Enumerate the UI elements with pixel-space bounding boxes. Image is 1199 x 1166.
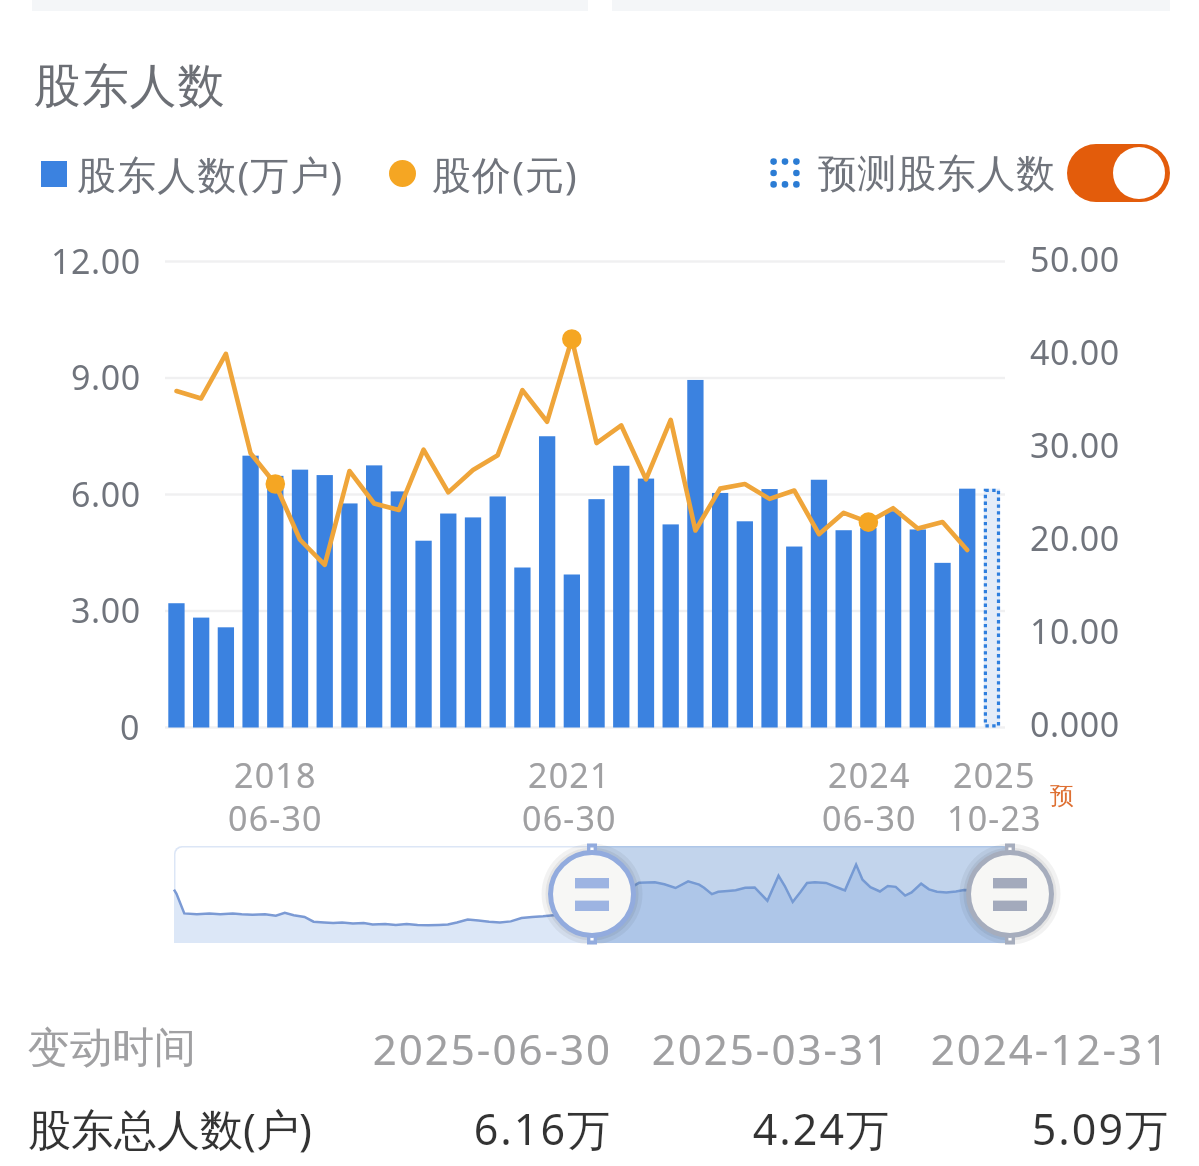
staticText: 6.16万	[334, 1099, 612, 1158]
staticText: 股东总人数(户)	[28, 1099, 312, 1158]
staticText: 2024	[828, 752, 911, 798]
staticText: 股价(元)	[432, 147, 578, 200]
button[interactable]: 股东人数(万户)	[41, 147, 344, 200]
staticText: 10-23	[947, 795, 1042, 841]
staticText: 预测股东人数	[818, 149, 1056, 198]
button[interactable]: Drag handle	[958, 842, 1062, 946]
staticText: 2024-12-31	[891, 1020, 1170, 1077]
staticText: 5.09万	[891, 1099, 1170, 1158]
staticText: 0	[120, 704, 141, 750]
staticText: 06-30	[822, 795, 917, 841]
staticText: 2025-06-30	[334, 1020, 612, 1077]
staticText: 40.00	[1030, 329, 1120, 375]
staticText: 股东人数(万户)	[77, 147, 344, 200]
button[interactable]: Drag handle	[540, 842, 644, 946]
button[interactable]: 预测股东人数	[770, 144, 1170, 202]
staticText: 0.000	[1030, 701, 1120, 747]
button[interactable]: 股价(元)	[389, 147, 578, 200]
staticText: 50.00	[1030, 236, 1120, 282]
staticText: 06-30	[228, 795, 323, 841]
staticText: 06-30	[522, 795, 617, 841]
staticText: 2021	[528, 752, 611, 798]
staticText: 2025-03-31	[612, 1020, 891, 1077]
staticText: 预	[1050, 781, 1074, 811]
staticText: 2025	[953, 752, 1036, 798]
staticText: 股东人数	[34, 57, 226, 116]
staticText: 4.24万	[612, 1099, 891, 1158]
staticText: 变动时间	[28, 1022, 196, 1075]
staticText: 12.00	[51, 238, 141, 284]
staticText: 3.00	[71, 587, 141, 633]
staticText: 10.00	[1030, 608, 1120, 654]
staticText: 9.00	[71, 354, 141, 400]
staticText: 20.00	[1030, 515, 1120, 561]
staticText: 6.00	[71, 471, 141, 517]
staticText: 2018	[234, 752, 317, 798]
staticText: 30.00	[1030, 422, 1120, 468]
button[interactable]: Range selector	[174, 846, 1010, 943]
